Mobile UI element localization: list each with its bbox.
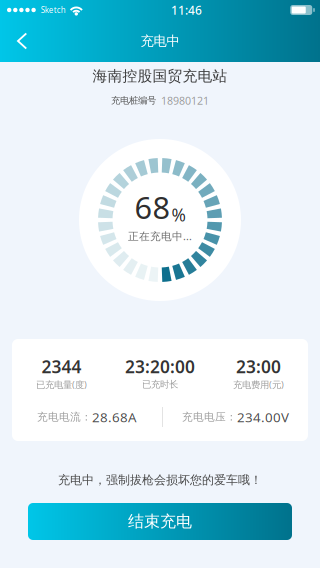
staticText: 已充时长 [142,379,178,390]
staticText: Sketch [41,5,66,15]
staticText: 68 [134,187,170,227]
staticText: 11:46 [171,2,202,18]
button[interactable]: 结束充电 [28,503,292,540]
staticText: 2344 [41,355,81,378]
staticText: 充电电流： [37,410,92,423]
staticText: % [171,203,185,226]
staticText: 充电费用(元) [233,378,284,391]
button[interactable]: Back [0,20,44,62]
staticText: 结束充电 [128,512,192,531]
staticText: 充电电压： [182,410,237,423]
staticText: 正在充电中... [128,229,192,243]
staticText: 28.68A [92,408,137,426]
staticText: 23:00 [236,355,281,378]
staticText: 18980121 [161,93,209,108]
staticText: 234.00V [237,408,289,426]
staticText: 已充电量(度) [36,378,87,391]
staticText: 充电中 [140,33,179,49]
staticText: 海南控股国贸充电站 [92,67,227,85]
staticText: 充电桩编号 [111,95,156,106]
staticText: 23:20:00 [125,355,195,378]
staticText: 充电中，强制拔枪会损坏您的爱车哦！ [58,473,262,487]
